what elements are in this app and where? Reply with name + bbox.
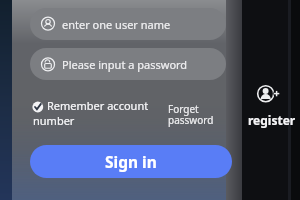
button[interactable]: register [244,80,296,128]
staticText: enter one user name [62,17,171,32]
staticText: Forget password [168,102,214,127]
staticText: Please input a password [62,57,188,72]
button[interactable]: Forget password [166,102,214,130]
staticText: register [248,112,296,128]
button[interactable]: enter one user name [30,8,226,40]
staticText: Remember account [47,98,149,113]
staticText: number [33,113,75,128]
button[interactable]: Please input a password [30,48,226,80]
staticText: Sign in [105,151,157,172]
button[interactable]: Sign in [30,145,232,178]
button[interactable]: Remember account [27,97,161,129]
